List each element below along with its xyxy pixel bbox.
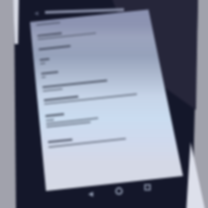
button[interactable]: Tablet showing software information: [0, 0, 208, 208]
